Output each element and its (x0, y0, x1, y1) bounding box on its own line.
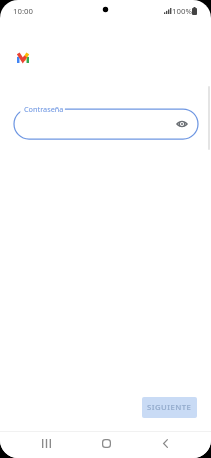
staticText: 100% (172, 6, 192, 17)
button[interactable]: Atrás (151, 435, 180, 452)
button[interactable]: SIGUIENTE (142, 397, 197, 418)
button[interactable]: Inicio (92, 435, 121, 452)
staticText: SIGUIENTE (147, 402, 192, 413)
button[interactable]: Recientes (32, 435, 61, 452)
button[interactable]: Mostrar contraseña (175, 117, 189, 131)
staticText: 10:00 (13, 6, 33, 17)
staticText: Contraseña (24, 104, 64, 114)
